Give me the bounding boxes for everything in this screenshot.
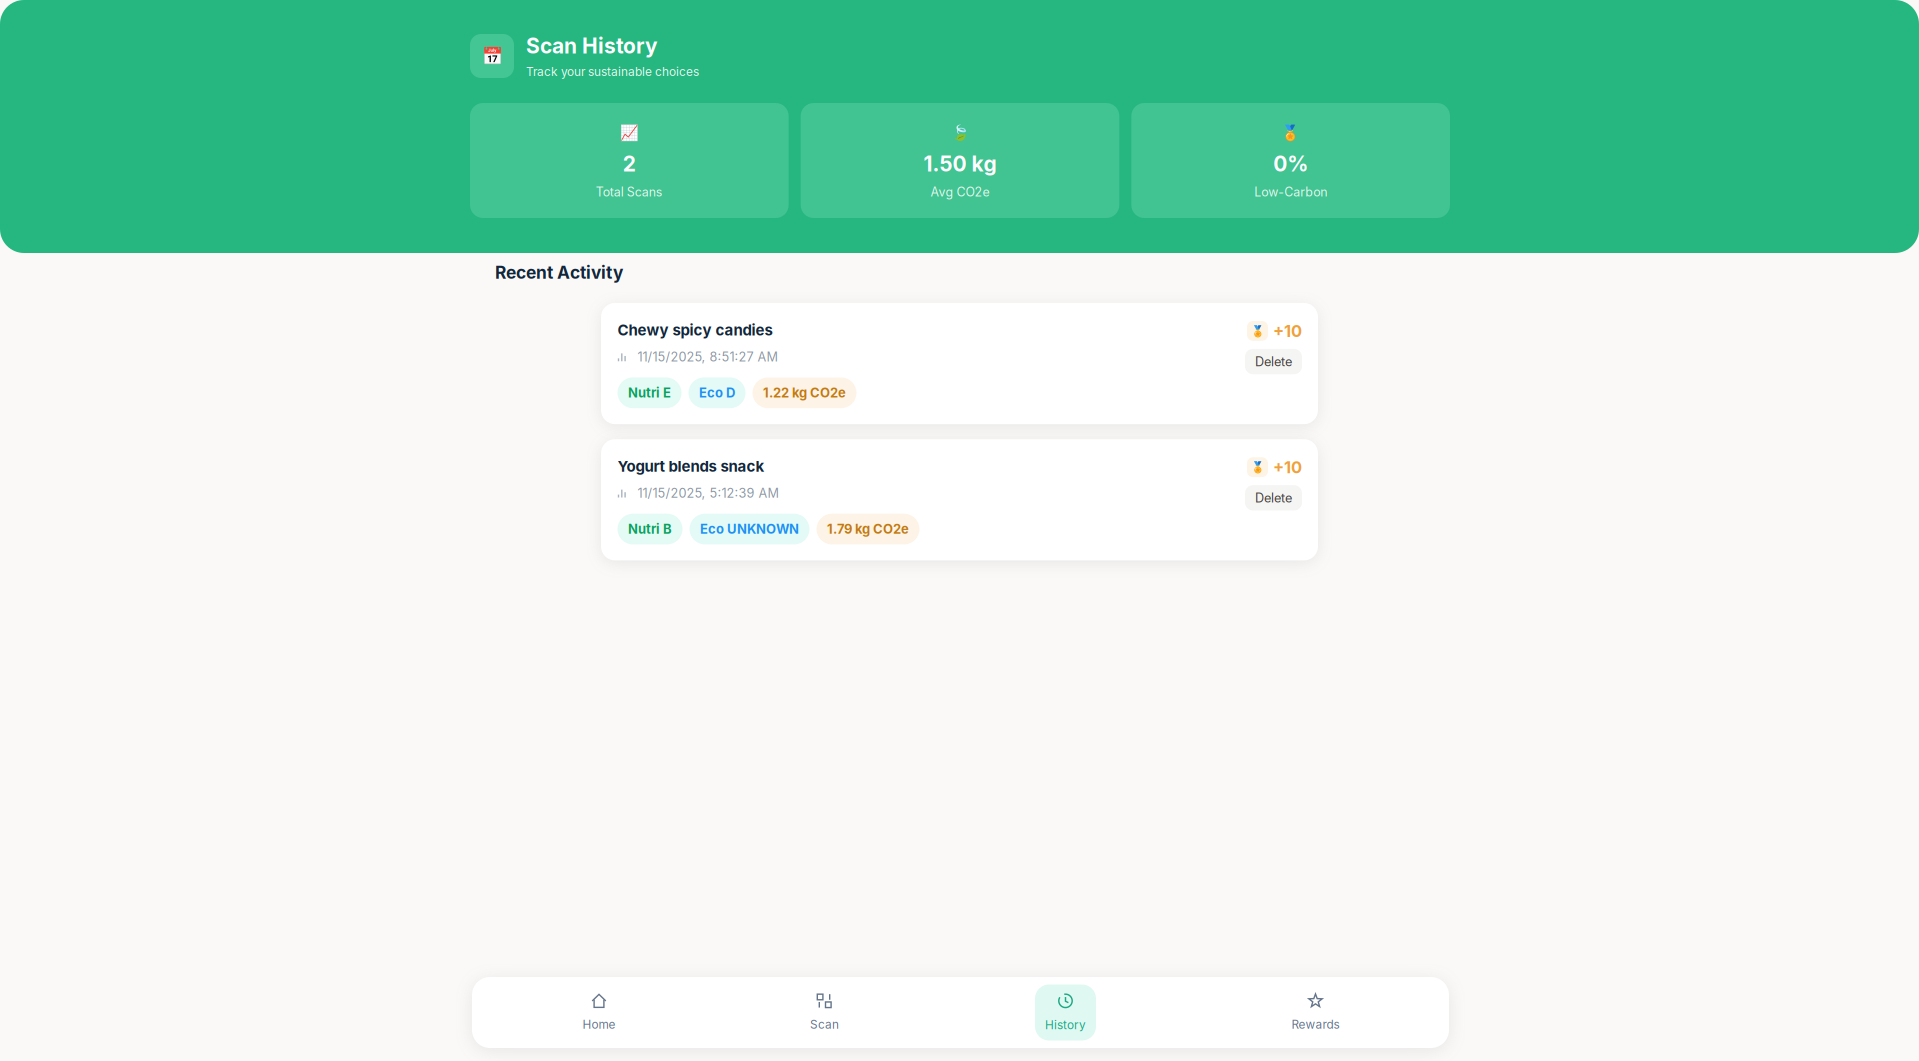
staticText: Chewy spicy candies [617, 321, 772, 339]
staticText: Avg CO2e [930, 184, 989, 199]
staticText: Scan [810, 1017, 839, 1032]
staticText: 11/15/2025, 8:51:27 AM [637, 349, 777, 364]
button[interactable]: History [1035, 984, 1096, 1040]
staticText: 🏅 [1250, 324, 1264, 337]
staticText: Delete [1255, 354, 1292, 369]
staticText: Low-Carbon [1254, 184, 1327, 199]
staticText: +10 [1273, 457, 1302, 477]
staticText: +10 [1273, 321, 1302, 341]
staticText: 11/15/2025, 5:12:39 AM [637, 485, 778, 501]
staticText: Home [582, 1017, 615, 1032]
staticText: Recent Activity [495, 262, 623, 283]
staticText: 1.79 kg CO2e [827, 521, 909, 537]
button[interactable]: Home [571, 984, 626, 1040]
staticText: History [1045, 1018, 1086, 1032]
staticText: Rewards [1291, 1017, 1339, 1032]
staticText: Nutri B [628, 521, 672, 537]
staticText: Delete [1255, 490, 1292, 505]
staticText: Total Scans [596, 184, 663, 199]
staticText: Track your sustainable choices [526, 64, 699, 79]
staticText: Scan History [526, 33, 658, 58]
staticText: 1.50 kg [923, 151, 996, 176]
button[interactable]: Delete [1245, 349, 1302, 374]
staticText: 📅 [481, 46, 502, 66]
staticText: 🏅 [1250, 461, 1264, 474]
staticText: 2 [623, 151, 636, 176]
staticText: Yogurt blends snack [617, 457, 764, 475]
staticText: 📈 [620, 124, 639, 142]
staticText: 🍃 [950, 124, 969, 142]
button[interactable]: Scan [800, 984, 849, 1040]
staticText: 1.22 kg CO2e [763, 385, 846, 401]
button[interactable]: Rewards [1282, 984, 1349, 1040]
button[interactable]: Delete [1245, 485, 1302, 510]
staticText: 🏅 [1281, 124, 1300, 142]
staticText: Eco UNKNOWN [700, 521, 799, 537]
staticText: 0% [1273, 151, 1308, 176]
staticText: Nutri E [628, 385, 671, 401]
staticText: Eco D [699, 385, 735, 401]
